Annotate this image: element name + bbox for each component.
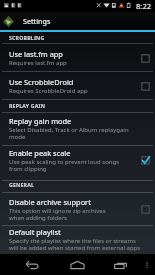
staticText: Enable peak scale [9,148,71,158]
button[interactable]: Default playlist [0,224,155,255]
staticText: Use ScrobbleDroid [9,77,74,87]
button[interactable]: Settings [0,12,155,30]
staticText: GENERAL [9,181,35,188]
button[interactable]: Disable archive support [0,194,155,225]
button[interactable]: Back [13,254,49,275]
staticText: Disable archive support [9,197,91,207]
staticText: Specify the playlist where the files or … [9,237,141,252]
staticText: Requires ScrobbleDroid app [9,87,88,95]
staticText: Use last.fm app [9,49,63,59]
button[interactable]: Use last.fm app [0,46,155,70]
staticText: Settings [23,16,51,26]
staticText: Requires last.fm app [9,59,67,67]
staticText: REPLAY GAIN [9,102,46,109]
staticText: SCROBBLING [9,34,45,41]
staticText: Replay gain mode [9,116,72,126]
button[interactable]: More options [139,254,155,275]
staticText: Use peak scaling to prevent loud songs f… [9,158,120,173]
button[interactable]: Home [59,254,95,275]
button[interactable]: Recent apps [102,254,138,275]
staticText: 8:22 [136,1,152,11]
button[interactable]: Enable peak scale [0,145,155,176]
button[interactable]: Use ScrobbleDroid [0,74,155,98]
staticText: This option will ignore zip archives whe… [9,207,106,222]
staticText: Default playlist [9,227,61,237]
button[interactable]: Replay gain mode [0,113,155,144]
staticText: Select Disabled, Track or Album replayga… [9,126,129,141]
